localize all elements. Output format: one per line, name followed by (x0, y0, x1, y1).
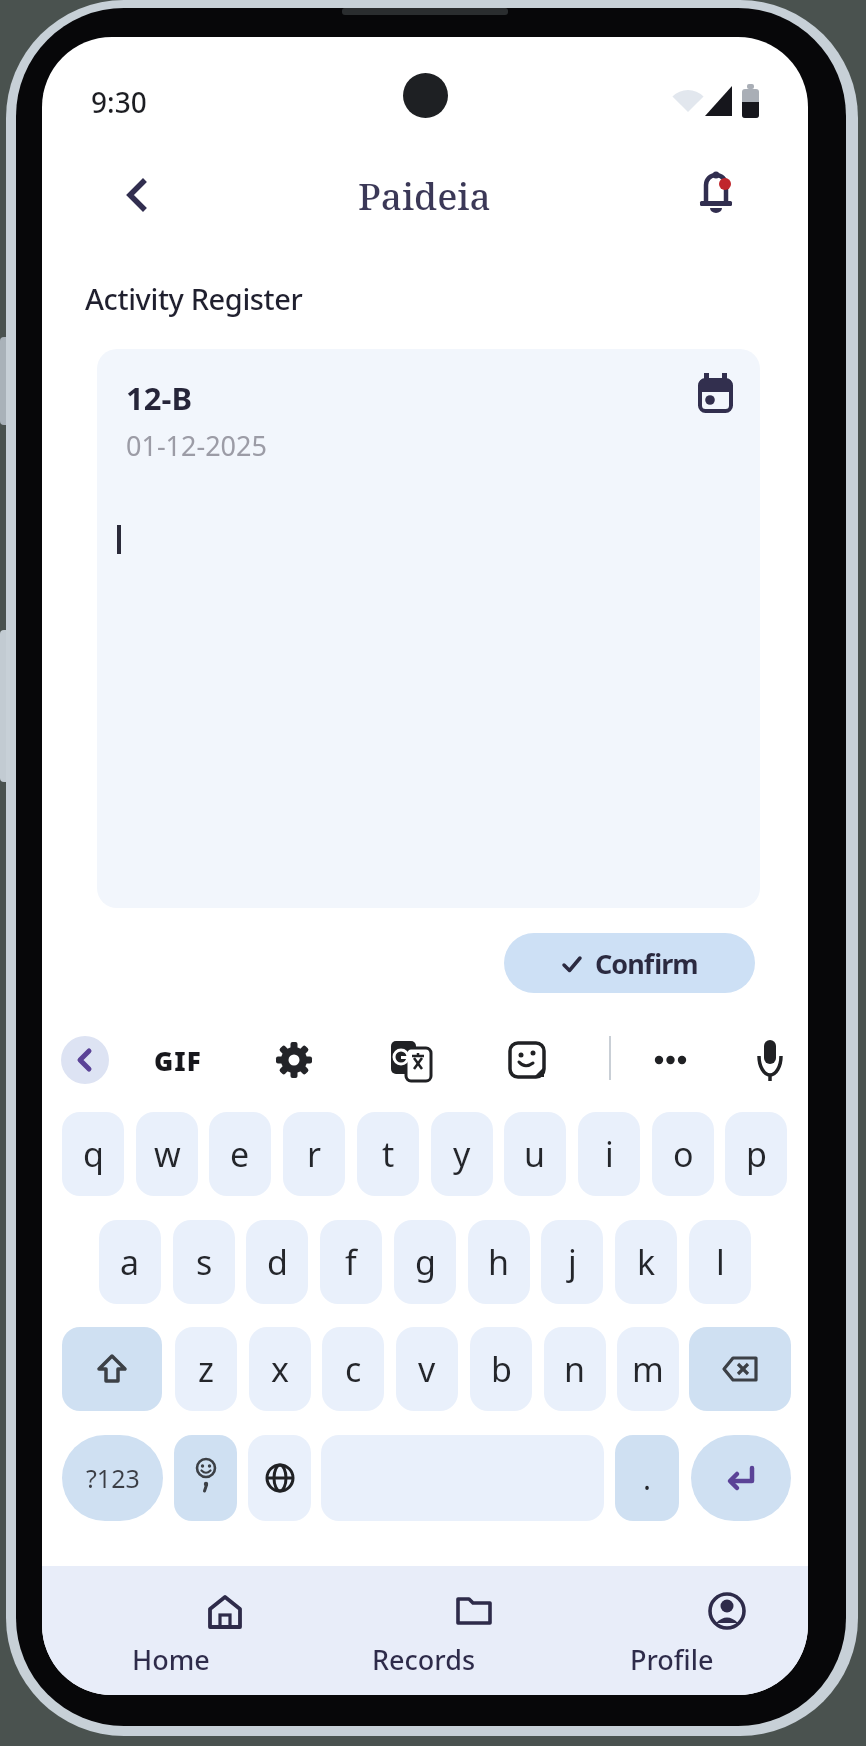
button[interactable]: ?123 (62, 1435, 163, 1521)
button[interactable] (746, 1036, 794, 1084)
staticText: Paideia (358, 170, 491, 220)
button[interactable]: f (320, 1220, 382, 1304)
staticText: r (307, 1131, 322, 1177)
button[interactable]: v (396, 1327, 458, 1411)
staticText: m (632, 1346, 664, 1392)
button[interactable]: m (617, 1327, 679, 1411)
staticText: 12-B (126, 377, 192, 419)
button[interactable]: a (99, 1220, 161, 1304)
button[interactable]: u (504, 1112, 566, 1196)
staticText: x (271, 1346, 289, 1392)
button[interactable]: x (249, 1327, 311, 1411)
staticText: v (418, 1346, 436, 1392)
button[interactable]: s (173, 1220, 235, 1304)
button[interactable] (686, 165, 746, 225)
staticText: b (491, 1346, 512, 1392)
staticText: Home (132, 1641, 210, 1678)
button[interactable]: c (322, 1327, 384, 1411)
staticText: g (415, 1239, 436, 1285)
staticText: o (673, 1131, 694, 1177)
button[interactable]: . (615, 1435, 679, 1521)
staticText: ?123 (86, 1461, 140, 1495)
staticText: p (746, 1131, 767, 1177)
staticText: a (120, 1239, 140, 1285)
button[interactable] (646, 1036, 694, 1084)
staticText: f (345, 1239, 357, 1285)
button[interactable] (61, 1036, 109, 1084)
button[interactable] (503, 1036, 551, 1084)
staticText: 9:30 (91, 83, 147, 121)
staticText: h (488, 1239, 510, 1285)
staticText: j (568, 1239, 577, 1285)
staticText: c (345, 1346, 362, 1392)
button[interactable] (248, 1435, 311, 1521)
button[interactable]: l (689, 1220, 751, 1304)
button[interactable] (62, 1327, 162, 1411)
button[interactable]: q (62, 1112, 124, 1196)
staticText: i (605, 1131, 614, 1177)
button[interactable]: Confirm (504, 933, 755, 993)
staticText: 01-12-2025 (126, 427, 267, 464)
staticText: d (267, 1239, 288, 1285)
staticText: Records (372, 1641, 476, 1678)
staticText: s (196, 1239, 213, 1285)
button[interactable]: GIF (148, 1036, 208, 1084)
button[interactable] (107, 165, 167, 225)
button[interactable]: o (652, 1112, 714, 1196)
button[interactable]: d (246, 1220, 308, 1304)
staticText: w (154, 1131, 181, 1177)
button[interactable]: k (615, 1220, 677, 1304)
button[interactable] (174, 1435, 237, 1521)
button[interactable]: j (541, 1220, 603, 1304)
button[interactable]: t (357, 1112, 419, 1196)
button[interactable]: w (136, 1112, 198, 1196)
staticText: . (643, 1458, 652, 1499)
staticText: GIF (154, 1043, 202, 1078)
button[interactable]: p (725, 1112, 787, 1196)
button[interactable]: i (578, 1112, 640, 1196)
staticText: y (453, 1131, 471, 1177)
staticText: Confirm (595, 945, 698, 982)
staticText: Activity Register (85, 279, 303, 318)
staticText: z (198, 1346, 214, 1392)
button[interactable]: e (209, 1112, 271, 1196)
button[interactable]: b (470, 1327, 532, 1411)
staticText: Profile (630, 1641, 714, 1678)
staticText: k (637, 1239, 656, 1285)
button[interactable] (270, 1036, 318, 1084)
button[interactable]: y (431, 1112, 493, 1196)
button[interactable] (354, 1577, 494, 1687)
button[interactable] (606, 1577, 746, 1687)
staticText: u (524, 1131, 546, 1177)
button[interactable] (689, 1327, 791, 1411)
button[interactable] (103, 1577, 243, 1687)
staticText: l (716, 1239, 725, 1285)
staticText: t (382, 1131, 395, 1177)
button[interactable]: z (175, 1327, 237, 1411)
button[interactable]: g (394, 1220, 456, 1304)
staticText: e (230, 1131, 250, 1177)
button[interactable]: n (544, 1327, 606, 1411)
button[interactable] (387, 1036, 435, 1084)
staticText: n (564, 1346, 586, 1392)
button[interactable]: 12-B (97, 349, 760, 908)
button[interactable]: h (468, 1220, 530, 1304)
button[interactable]: r (283, 1112, 345, 1196)
button[interactable] (691, 1435, 791, 1521)
staticText: q (83, 1131, 104, 1177)
